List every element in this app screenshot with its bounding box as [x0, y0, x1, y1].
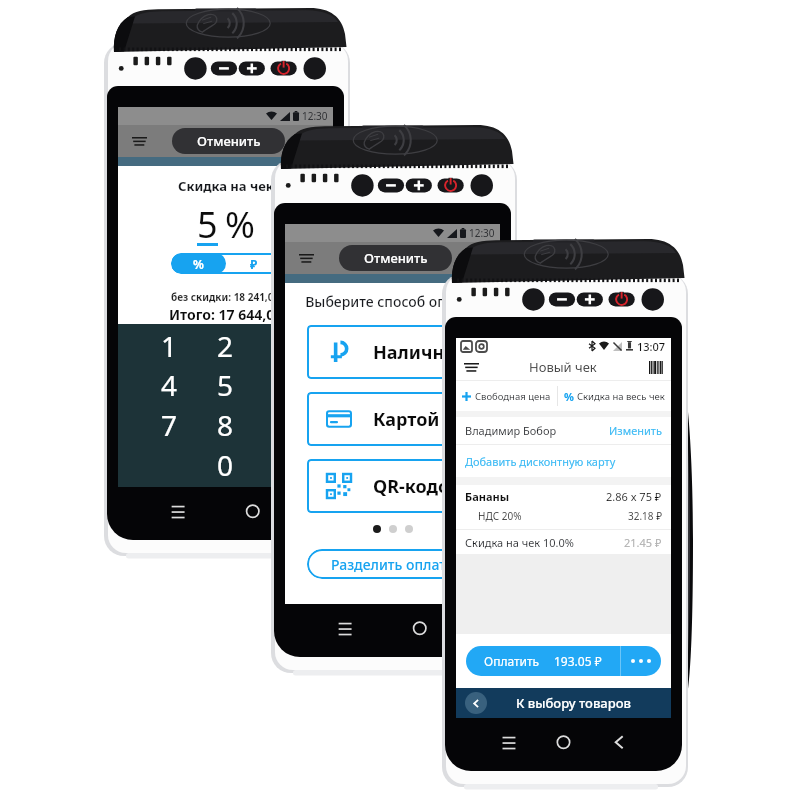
staticText: 32.18 ₽: [628, 509, 662, 523]
button[interactable]: Menu: [128, 130, 150, 152]
staticText: %: [564, 389, 574, 404]
staticText: Новый чек: [529, 358, 597, 376]
button[interactable]: Разделить оплату: [307, 549, 478, 579]
staticText: Отменить: [197, 132, 261, 150]
staticText: Оплатить: [484, 653, 540, 669]
staticText: Наличными: [373, 340, 478, 365]
button[interactable]: 9: [253, 405, 309, 445]
button[interactable]: Отменить: [172, 128, 285, 154]
button[interactable]: More options: [621, 646, 661, 676]
button[interactable]: Menu: [464, 357, 484, 377]
staticText: 2.86 x 75 ₽: [606, 489, 662, 504]
button[interactable]: %: [171, 253, 226, 274]
staticText: 2: [217, 327, 234, 365]
button[interactable]: Scan barcode: [643, 357, 663, 377]
button[interactable]: Оплатить: [466, 646, 620, 676]
staticText: %: [225, 200, 255, 249]
button[interactable]: 2: [197, 326, 253, 365]
staticText: 13:07: [637, 339, 666, 354]
staticText: 4: [161, 366, 178, 404]
staticText: Скидка на весь чек: [577, 390, 665, 403]
staticText: 9: [273, 406, 290, 444]
button[interactable]: Добавить дисконтную карту: [456, 445, 671, 477]
button[interactable]: 0: [197, 445, 253, 485]
button[interactable]: ₽: [226, 253, 281, 274]
staticText: 193.05 ₽: [554, 653, 602, 669]
staticText: 7: [161, 406, 178, 444]
staticText: Разделить оплату: [331, 555, 454, 574]
staticText: Картой: [373, 407, 440, 432]
staticText: Скидка на чек 10.0%: [465, 535, 574, 550]
staticText: Изменить: [609, 423, 662, 438]
staticText: QR-кодом: [373, 474, 465, 499]
staticText: 12:30: [469, 226, 495, 240]
staticText: Отменить: [364, 249, 428, 267]
staticText: 6: [273, 366, 290, 404]
staticText: НДС 20%: [478, 509, 522, 523]
staticText: 5: [197, 200, 218, 249]
staticText: 5: [217, 366, 234, 404]
staticText: 21.45 ₽: [624, 535, 662, 550]
staticText: %: [193, 256, 204, 272]
button[interactable]: 6: [253, 365, 309, 405]
staticText: Добавить дисконтную карту: [465, 454, 616, 469]
button[interactable]: Картой: [307, 392, 478, 446]
button[interactable]: Menu: [295, 247, 317, 269]
button[interactable]: Отменить: [339, 245, 452, 271]
staticText: К выбору товаров: [516, 694, 631, 712]
button[interactable]: %: [558, 381, 671, 411]
button[interactable]: QR-кодом: [307, 459, 478, 513]
button[interactable]: 3: [253, 326, 309, 365]
staticText: Выберите способ оплаты: [285, 292, 500, 311]
staticText: Скидка на чек: [178, 177, 274, 195]
button[interactable]: 5: [197, 365, 253, 405]
button[interactable]: Наличными: [307, 325, 478, 379]
staticText: 12:30: [302, 109, 328, 123]
button[interactable]: Back: [465, 692, 487, 714]
button[interactable]: 1: [142, 326, 197, 365]
button[interactable]: Владимир Бобор: [456, 417, 671, 444]
staticText: 0: [217, 446, 234, 484]
staticText: без скидки: 18 241,00: [171, 290, 280, 304]
staticText: Бананы: [465, 489, 510, 504]
staticText: Итого: 17 644,00: [169, 305, 283, 324]
button[interactable]: 4: [142, 365, 197, 405]
staticText: ₽: [250, 256, 258, 272]
staticText: 1: [161, 327, 178, 365]
button[interactable]: 8: [197, 405, 253, 445]
staticText: Владимир Бобор: [465, 423, 557, 438]
button[interactable]: [253, 445, 309, 485]
staticText: 3: [273, 327, 290, 365]
staticText: Свободная цена: [475, 390, 551, 403]
button[interactable]: Back: [456, 688, 671, 718]
staticText: 8: [217, 406, 234, 444]
button[interactable]: 7: [142, 405, 197, 445]
button[interactable]: Свободная цена: [456, 381, 557, 411]
